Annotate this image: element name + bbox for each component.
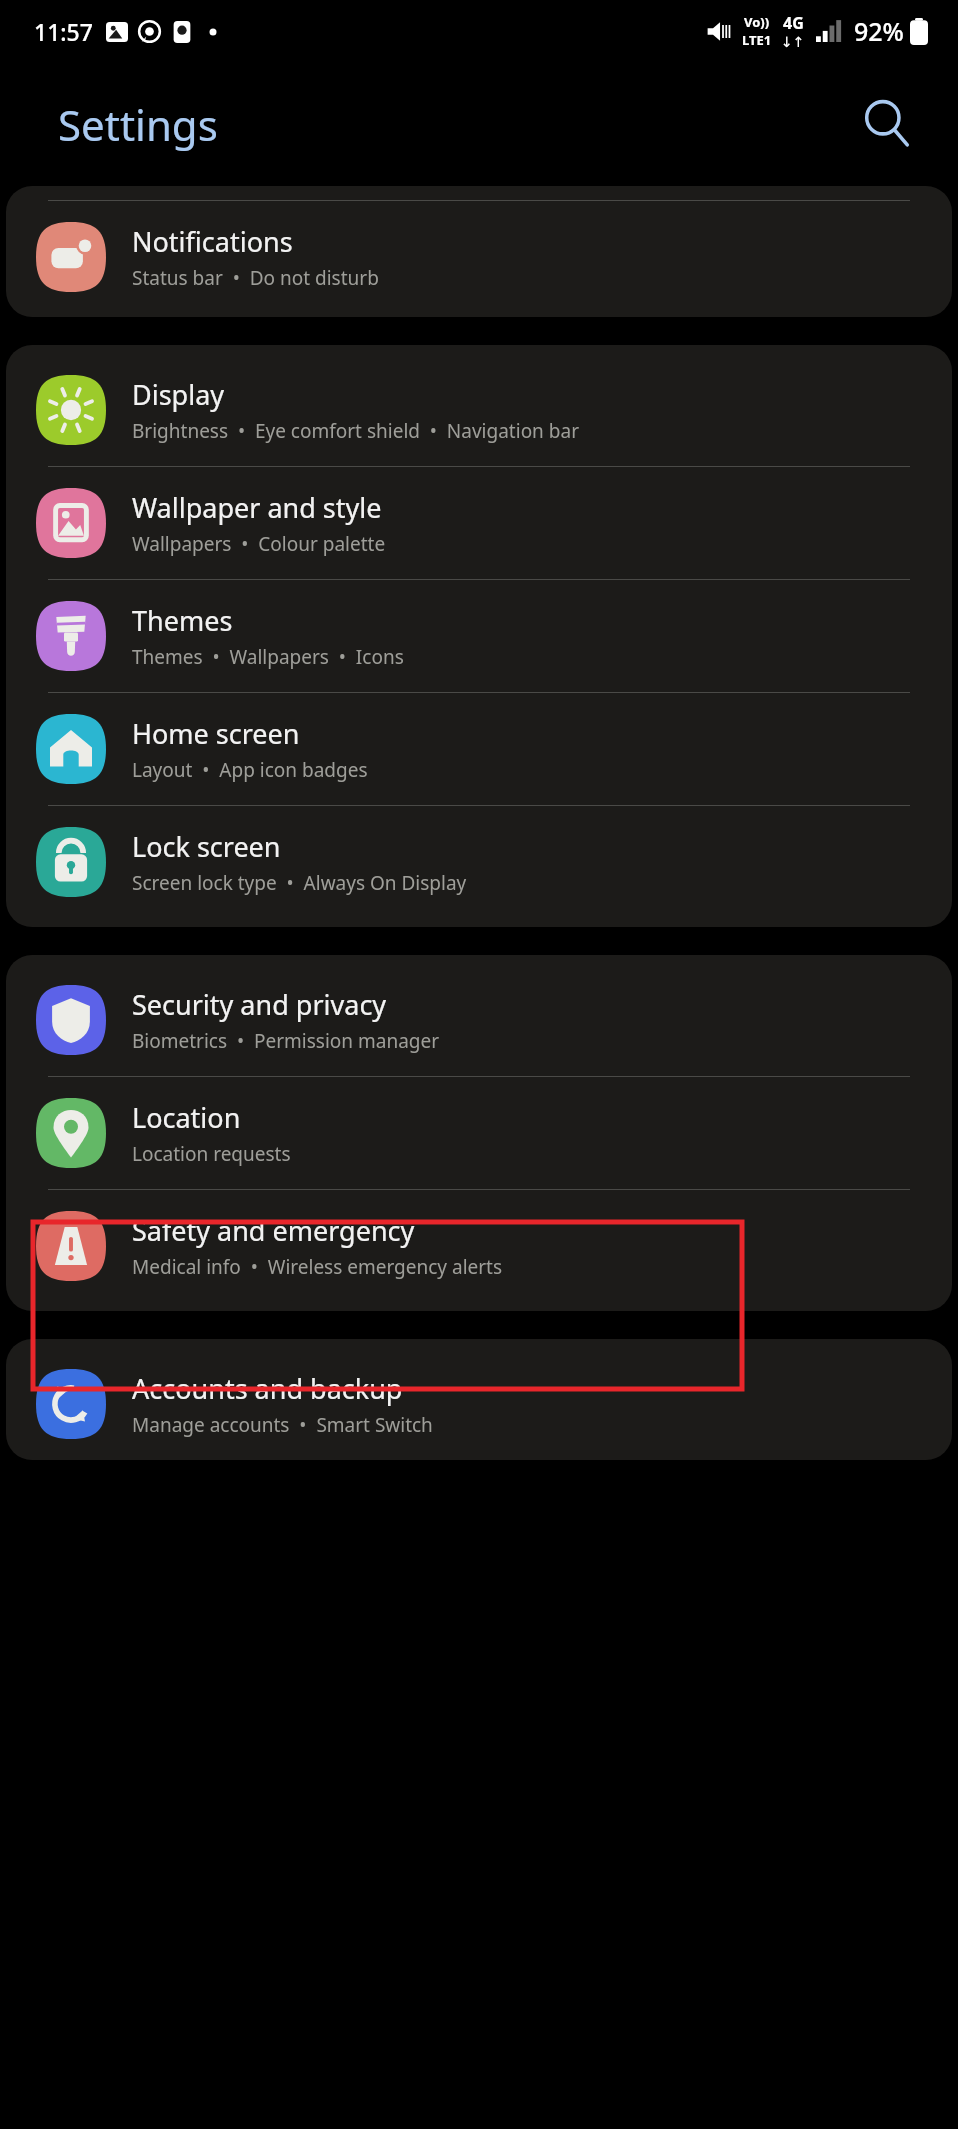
button[interactable]: Wallpaper and style (6, 466, 952, 579)
staticText: Display (132, 376, 225, 413)
staticText: ↓↑ (781, 34, 805, 50)
staticText: Settings (58, 96, 218, 153)
button[interactable]: Security and privacy (6, 964, 952, 1076)
staticText: LTE1 (742, 31, 772, 49)
button[interactable]: Themes (6, 579, 952, 692)
staticText: 92% (854, 14, 904, 48)
button[interactable]: Search (854, 91, 920, 157)
staticText: Home screen (132, 715, 300, 752)
staticText: Manage accounts • Smart Switch (132, 1412, 433, 1438)
button[interactable]: Accounts and backup (6, 1348, 952, 1460)
staticText: Medical info • Wireless emergency alerts (132, 1254, 503, 1280)
staticText: 11:57 (34, 16, 93, 47)
staticText: Biometrics • Permission manager (132, 1028, 440, 1054)
staticText: Location (132, 1099, 241, 1136)
staticText: Wallpaper and style (132, 489, 382, 526)
button[interactable]: Location (6, 1076, 952, 1189)
staticText: 4G (783, 12, 804, 34)
staticText: Location requests (132, 1141, 291, 1167)
staticText: Wallpapers • Colour palette (132, 531, 386, 557)
button[interactable]: Notifications (6, 200, 952, 313)
staticText: Notifications (132, 223, 293, 260)
button[interactable]: Safety and emergency (6, 1189, 952, 1302)
staticText: Layout • App icon badges (132, 757, 368, 783)
staticText: Brightness • Eye comfort shield • Naviga… (132, 418, 579, 444)
staticText: Security and privacy (132, 986, 387, 1023)
button[interactable]: Home screen (6, 692, 952, 805)
staticText: Accounts and backup (132, 1370, 403, 1407)
button[interactable]: Display (6, 354, 952, 466)
staticText: Themes • Wallpapers • Icons (132, 644, 404, 670)
staticText: Safety and emergency (132, 1212, 415, 1249)
staticText: Themes (132, 602, 233, 639)
staticText: Screen lock type • Always On Display (132, 870, 467, 896)
staticText: Lock screen (132, 828, 281, 865)
staticText: Status bar • Do not disturb (132, 265, 379, 291)
button[interactable]: Lock screen (6, 805, 952, 918)
staticText: Vo)) (744, 13, 770, 31)
